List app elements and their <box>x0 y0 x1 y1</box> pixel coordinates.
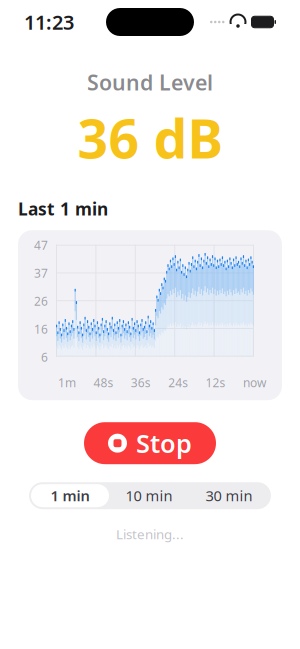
staticText: 10 min <box>125 486 172 505</box>
staticText: 1 min <box>50 486 89 505</box>
staticText: 37 <box>34 265 48 281</box>
staticText: now <box>243 375 266 391</box>
staticText: 48s <box>93 375 113 391</box>
staticText: 6 <box>41 349 48 365</box>
staticText: 24s <box>168 375 188 391</box>
button[interactable]: 30 min <box>189 484 269 507</box>
staticText: Listening... <box>116 525 184 543</box>
staticText: Stop <box>136 426 192 460</box>
staticText: Sound Level <box>87 68 213 96</box>
staticText: 16 <box>34 321 48 337</box>
button[interactable]: 10 min <box>109 484 189 507</box>
staticText: 26 <box>34 293 48 309</box>
staticText: 12s <box>206 375 226 391</box>
staticText: 1m <box>58 375 76 391</box>
button[interactable]: 1 min <box>31 484 109 507</box>
staticText: Last 1 min <box>18 197 108 220</box>
staticText: 11:23 <box>24 9 74 35</box>
staticText: 47 <box>34 237 48 253</box>
staticText: 30 min <box>205 486 252 505</box>
staticText: 36 dB <box>77 102 222 173</box>
button[interactable]: Stop <box>84 422 216 464</box>
staticText: 36s <box>131 375 151 391</box>
